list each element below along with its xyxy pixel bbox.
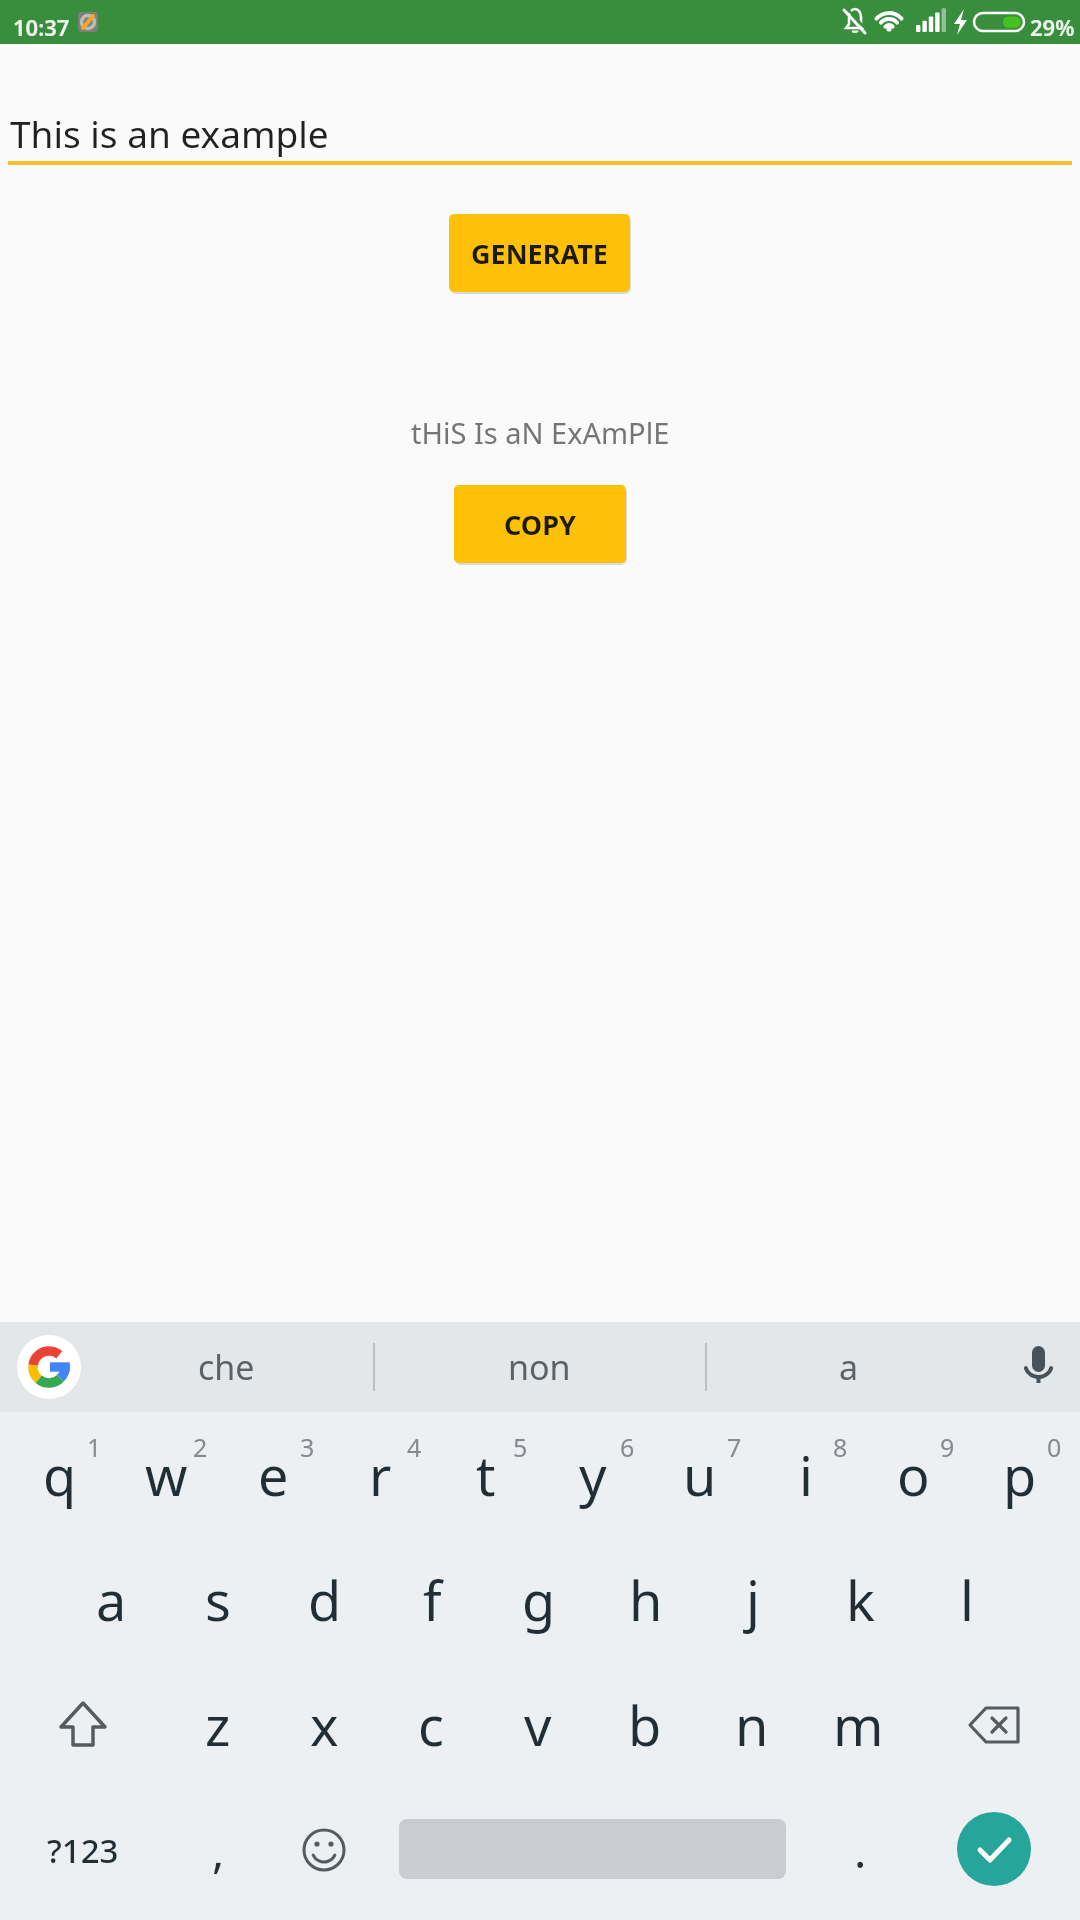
staticText: 8 [833,1430,848,1460]
button[interactable]: l [914,1537,1020,1663]
button[interactable]: d [272,1537,378,1663]
staticText: l [960,1563,974,1637]
staticText: che [198,1344,255,1390]
staticText: k [846,1563,875,1637]
staticText: r [369,1438,392,1512]
button[interactable] [957,1812,1031,1886]
staticText: 29% [1030,12,1075,42]
button[interactable]: r [327,1412,433,1538]
button[interactable]: m [805,1662,911,1788]
staticText: w [145,1438,188,1512]
button[interactable]: j [700,1537,806,1663]
staticText: y [579,1438,607,1512]
button[interactable]: x [271,1662,377,1788]
button[interactable]: g [486,1537,592,1663]
button[interactable]: che [86,1322,366,1412]
button[interactable]: b [592,1662,698,1788]
staticText: 2 [193,1430,208,1460]
button[interactable]: non [380,1322,698,1412]
staticText: non [508,1344,571,1390]
staticText: s [205,1563,231,1637]
button[interactable]: a [712,1322,986,1412]
button[interactable]: w [113,1412,219,1538]
button[interactable]: f [379,1537,485,1663]
button[interactable]: . [807,1787,913,1913]
button[interactable]: t [433,1412,539,1538]
button[interactable]: i [753,1412,859,1538]
button[interactable]: a [58,1537,164,1663]
button[interactable]: z [165,1662,271,1788]
button[interactable]: v [485,1662,591,1788]
staticText: . [854,1819,867,1882]
staticText: 9 [940,1430,955,1460]
button[interactable]: n [699,1662,805,1788]
button[interactable] [934,1665,1054,1785]
staticText: 4 [407,1430,422,1460]
staticText: a [839,1344,859,1390]
staticText: v [524,1688,552,1762]
button[interactable] [1006,1335,1070,1399]
staticText: z [205,1688,231,1762]
button[interactable]: c [378,1662,484,1788]
staticText: m [833,1688,884,1762]
button[interactable] [264,1790,384,1910]
staticText: j [746,1563,760,1637]
staticText: 6 [620,1430,635,1460]
staticText: o [897,1438,930,1512]
staticText: tHiS Is aN ExAmPlE [411,413,670,452]
staticText: This is an example [10,108,329,158]
staticText: 10:37 [13,12,70,42]
staticText: g [522,1563,556,1637]
staticText: 5 [513,1430,528,1460]
staticText: n [735,1688,769,1762]
staticText: i [799,1438,813,1512]
staticText: a [96,1563,127,1637]
staticText: q [43,1438,77,1512]
button[interactable] [23,1665,143,1785]
staticText: , [212,1819,225,1882]
button[interactable]: ?123 [23,1790,143,1910]
staticText: h [629,1563,663,1637]
button[interactable]: o [860,1412,966,1538]
staticText: f [423,1563,442,1637]
button[interactable]: k [807,1537,913,1663]
button[interactable] [17,1335,81,1399]
button[interactable]: e [220,1412,326,1538]
staticText: x [310,1688,339,1762]
button[interactable]: s [165,1537,271,1663]
staticText: 7 [727,1430,742,1460]
staticText: t [476,1438,496,1512]
button[interactable]: h [593,1537,699,1663]
button[interactable]: q [7,1412,113,1538]
staticText: b [628,1688,662,1762]
button[interactable]: p [967,1412,1073,1538]
staticText: GENERATE [471,235,608,272]
staticText: 1 [87,1430,102,1460]
staticText: c [418,1688,444,1762]
button[interactable]: COPY [454,485,626,563]
button[interactable]: y [540,1412,646,1538]
staticText: d [308,1563,342,1637]
button[interactable]: , [165,1787,271,1913]
staticText: COPY [504,506,576,543]
staticText: ?123 [47,1828,119,1873]
button[interactable]: u [647,1412,753,1538]
staticText: p [1003,1438,1037,1512]
button[interactable]: GENERATE [449,214,630,292]
staticText: e [258,1438,289,1512]
staticText: u [683,1438,717,1512]
staticText: 0 [1047,1430,1062,1460]
staticText: 3 [300,1430,315,1460]
